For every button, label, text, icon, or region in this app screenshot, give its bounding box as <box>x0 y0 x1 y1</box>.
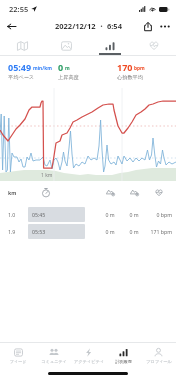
staticText: 171 bpm <box>146 228 172 235</box>
staticText: アクティビティ <box>74 359 104 364</box>
staticText: 0 m <box>122 211 146 218</box>
staticText: 0 m <box>98 211 122 218</box>
button[interactable]: Back <box>4 19 19 34</box>
staticText: 0 <box>58 61 64 73</box>
staticText: フィード <box>9 359 27 364</box>
staticText: bpm <box>134 65 145 72</box>
staticText: km <box>8 189 28 196</box>
staticText: 1.0 <box>8 211 28 218</box>
button[interactable]: アクティビティ <box>71 343 106 368</box>
staticText: 上昇高度 <box>58 74 79 81</box>
staticText: 1.9 <box>8 228 28 235</box>
staticText: 05:53 <box>32 228 46 235</box>
staticText: 計測履歴 <box>115 359 132 364</box>
staticText: 平均ペース <box>8 74 35 81</box>
button[interactable]: プロフィール <box>141 343 176 368</box>
staticText: 0 m <box>98 228 122 235</box>
button[interactable]: フィード <box>0 343 36 368</box>
button[interactable]: Heart rate <box>132 36 176 55</box>
staticText: min/km <box>33 65 52 72</box>
staticText: 170 <box>117 61 133 73</box>
staticText: m <box>65 65 70 72</box>
staticText: 22:55 <box>9 4 29 14</box>
staticText: 05:45 <box>32 211 46 218</box>
button[interactable]: コミュニティ <box>36 343 71 368</box>
button[interactable]: Map <box>0 36 44 55</box>
staticText: プロフィール <box>146 359 172 364</box>
staticText: 1 km <box>41 172 53 179</box>
staticText: 0 bpm <box>146 211 172 218</box>
button[interactable]: More options <box>157 19 172 34</box>
staticText: 2022/12/12 ・ 6:54 <box>55 21 122 31</box>
button[interactable]: Share <box>140 19 155 34</box>
staticText: 心拍数平均 <box>117 74 143 81</box>
staticText: 05:49 <box>8 61 32 73</box>
button[interactable]: Photos <box>44 36 88 55</box>
button[interactable]: 計測履歴 <box>106 343 141 368</box>
staticText: 0 m <box>122 228 146 235</box>
staticText: コミュニティ <box>41 359 67 364</box>
button[interactable]: Charts <box>88 36 132 55</box>
